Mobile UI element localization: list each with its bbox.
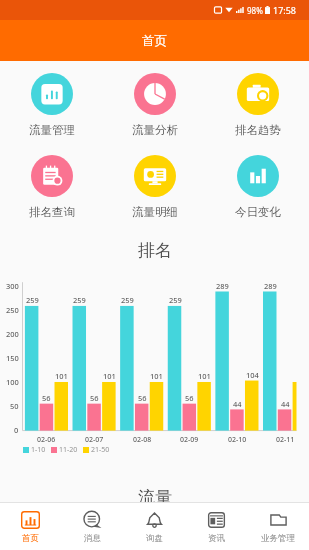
staticText: 流量分析 — [132, 123, 178, 137]
staticText: 排名查询 — [29, 205, 75, 219]
staticText: 询盘 — [146, 533, 163, 544]
staticText: 56 — [138, 393, 147, 403]
staticText: 0 — [14, 425, 19, 435]
staticText: 50 — [10, 401, 19, 411]
staticText: 今日变化 — [235, 205, 281, 219]
button[interactable]: 消息 — [61, 504, 123, 550]
staticText: 11-20 — [59, 445, 78, 455]
staticText: 259 — [169, 295, 182, 305]
staticText: 200 — [6, 329, 19, 339]
button[interactable]: 首页 — [0, 504, 61, 550]
staticText: 02-08 — [133, 435, 152, 445]
staticText: 02-11 — [276, 435, 295, 445]
staticText: 流量 — [138, 487, 172, 508]
staticText: 98% — [247, 5, 263, 16]
staticText: 流量明细 — [132, 205, 178, 219]
staticText: 101 — [198, 371, 211, 381]
button[interactable]: 流量管理 — [0, 73, 103, 137]
staticText: 289 — [264, 281, 277, 291]
staticText: 300 — [6, 281, 19, 291]
staticText: 业务管理 — [261, 533, 295, 544]
staticText: 消息 — [84, 533, 101, 544]
staticText: 流量管理 — [29, 123, 75, 137]
staticText: 资讯 — [208, 533, 225, 544]
staticText: 101 — [103, 371, 116, 381]
staticText: 56 — [185, 393, 194, 403]
button[interactable]: 流量明细 — [103, 155, 206, 219]
staticText: 排名 — [138, 240, 172, 261]
staticText: 21-50 — [91, 445, 110, 455]
button[interactable]: 资讯 — [185, 504, 247, 550]
staticText: 02-09 — [180, 435, 199, 445]
staticText: 排名趋势 — [235, 123, 281, 137]
staticText: 02-07 — [85, 435, 104, 445]
staticText: 44 — [233, 399, 242, 409]
staticText: 56 — [90, 393, 99, 403]
button[interactable]: 排名趋势 — [206, 73, 309, 137]
staticText: 56 — [42, 393, 51, 403]
staticText: 44 — [281, 399, 290, 409]
staticText: 150 — [6, 353, 19, 363]
staticText: 259 — [26, 295, 39, 305]
staticText: 101 — [150, 371, 163, 381]
staticText: 250 — [6, 305, 19, 315]
staticText: 259 — [73, 295, 86, 305]
staticText: 259 — [121, 295, 134, 305]
staticText: 17:58 — [273, 4, 297, 16]
button[interactable]: 今日变化 — [206, 155, 309, 219]
staticText: 首页 — [22, 533, 39, 544]
button[interactable]: 流量分析 — [103, 73, 206, 137]
staticText: 02-06 — [37, 435, 56, 445]
button[interactable]: 业务管理 — [247, 504, 309, 550]
staticText: 1-10 — [31, 445, 46, 455]
staticText: 104 — [246, 370, 259, 380]
button[interactable]: 询盘 — [123, 504, 185, 550]
staticText: 首页 — [142, 33, 167, 49]
staticText: 289 — [216, 281, 229, 291]
staticText: 02-10 — [228, 435, 247, 445]
button[interactable]: 排名查询 — [0, 155, 103, 219]
staticText: 100 — [6, 377, 19, 387]
staticText: 101 — [55, 371, 68, 381]
